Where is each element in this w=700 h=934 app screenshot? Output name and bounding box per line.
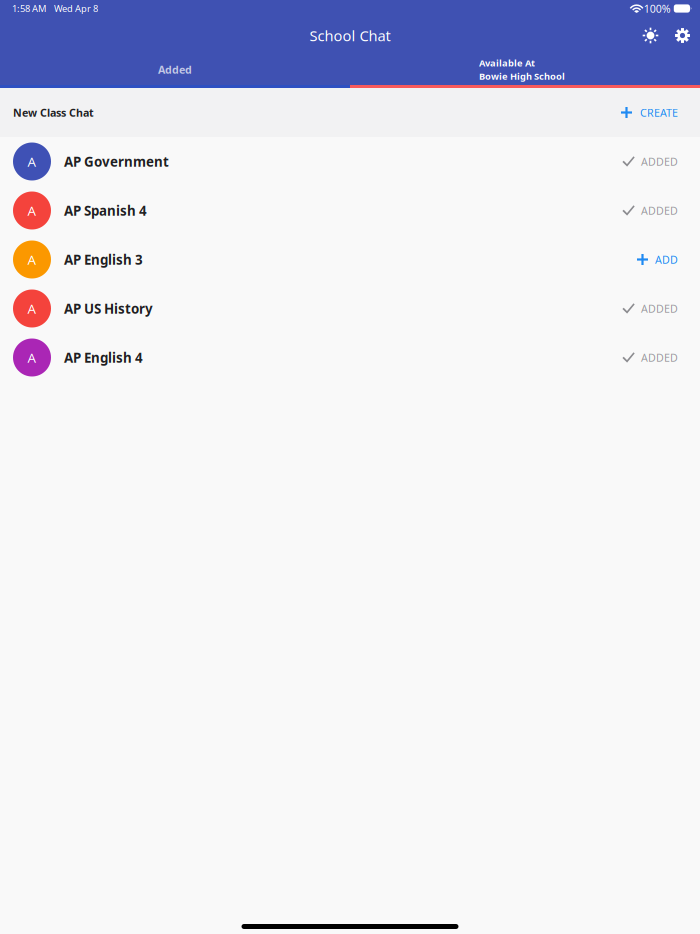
staticText: CREATE xyxy=(640,105,678,120)
staticText: A xyxy=(27,349,36,366)
staticText: AP English 3 xyxy=(64,251,143,268)
staticText: ADDED xyxy=(641,350,678,365)
staticText: Wed Apr 8 xyxy=(54,2,98,15)
staticText: ADDED xyxy=(641,203,678,218)
button[interactable]: Brightness xyxy=(634,22,667,48)
staticText: AP Spanish 4 xyxy=(64,202,147,219)
button[interactable]: A xyxy=(0,333,700,382)
staticText: AP US History xyxy=(64,300,153,317)
staticText: New Class Chat xyxy=(13,105,94,120)
staticText: 100% xyxy=(644,1,671,16)
button[interactable]: Settings xyxy=(667,22,698,48)
staticText: 1:58 AM xyxy=(12,2,46,15)
staticText: A xyxy=(27,153,36,170)
button[interactable]: A xyxy=(0,137,700,186)
staticText: ADDED xyxy=(641,301,678,316)
staticText: A xyxy=(27,202,36,219)
button[interactable]: A xyxy=(0,284,700,333)
button[interactable]: Available At xyxy=(350,54,700,85)
staticText: Bowie High School xyxy=(479,70,565,82)
staticText: AP Government xyxy=(64,153,169,170)
staticText: School Chat xyxy=(309,26,390,45)
button[interactable]: A xyxy=(0,235,700,284)
staticText: Added xyxy=(158,62,192,77)
button[interactable]: Added xyxy=(0,54,350,85)
button[interactable]: A xyxy=(0,186,700,235)
staticText: A xyxy=(27,251,36,268)
button[interactable]: CREATE xyxy=(621,105,700,120)
staticText: ADDED xyxy=(641,154,678,169)
staticText: AP English 4 xyxy=(64,349,143,366)
staticText: Available At xyxy=(479,57,535,69)
staticText: ADD xyxy=(655,252,678,267)
staticText: A xyxy=(27,300,36,317)
